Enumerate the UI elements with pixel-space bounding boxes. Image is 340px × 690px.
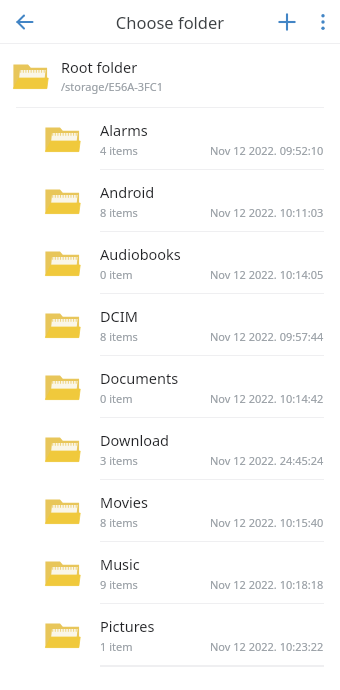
- button[interactable]: Download: [0, 418, 340, 479]
- staticText: Nov 12 2022. 10:14:42: [210, 391, 324, 406]
- staticText: Choose folder: [0, 11, 340, 33]
- button[interactable]: Pictures: [0, 604, 340, 665]
- staticText: 3 items: [100, 453, 138, 468]
- staticText: /storage/E56A-3FC1: [61, 79, 164, 94]
- staticText: Root folder: [61, 57, 138, 77]
- staticText: Pictures: [100, 616, 155, 636]
- button[interactable]: Alarms: [0, 108, 340, 169]
- staticText: Download: [100, 430, 169, 450]
- staticText: 8 items: [100, 329, 138, 344]
- staticText: Nov 12 2022. 09:52:10: [210, 143, 324, 158]
- button[interactable]: More options: [306, 5, 340, 39]
- button[interactable]: Add folder: [268, 3, 306, 41]
- staticText: Audiobooks: [100, 244, 181, 264]
- staticText: 0 item: [100, 391, 133, 406]
- button[interactable]: Movies: [0, 480, 340, 541]
- staticText: Nov 12 2022. 10:23:22: [210, 639, 324, 654]
- button[interactable]: Documents: [0, 356, 340, 417]
- staticText: Nov 12 2022. 10:11:03: [210, 205, 324, 220]
- staticText: Nov 12 2022. 24:45:24: [210, 453, 324, 468]
- staticText: Alarms: [100, 120, 148, 140]
- staticText: Android: [100, 182, 155, 202]
- staticText: Nov 12 2022. 10:15:40: [210, 515, 324, 530]
- button[interactable]: Back: [6, 3, 44, 41]
- staticText: 8 items: [100, 515, 138, 530]
- staticText: Movies: [100, 492, 148, 512]
- staticText: Nov 12 2022. 10:18:18: [210, 577, 324, 592]
- staticText: Nov 12 2022. 10:14:05: [210, 267, 324, 282]
- staticText: Documents: [100, 368, 179, 388]
- staticText: DCIM: [100, 306, 138, 326]
- staticText: 8 items: [100, 205, 138, 220]
- staticText: 0 item: [100, 267, 133, 282]
- button[interactable]: Audiobooks: [0, 232, 340, 293]
- staticText: Music: [100, 554, 140, 574]
- button[interactable]: Root folder: [0, 44, 340, 107]
- button[interactable]: DCIM: [0, 294, 340, 355]
- button[interactable]: Android: [0, 170, 340, 231]
- button[interactable]: Music: [0, 542, 340, 603]
- staticText: Nov 12 2022. 09:57:44: [210, 329, 324, 344]
- staticText: 1 item: [100, 639, 133, 654]
- staticText: 9 items: [100, 577, 138, 592]
- staticText: 4 items: [100, 143, 138, 158]
